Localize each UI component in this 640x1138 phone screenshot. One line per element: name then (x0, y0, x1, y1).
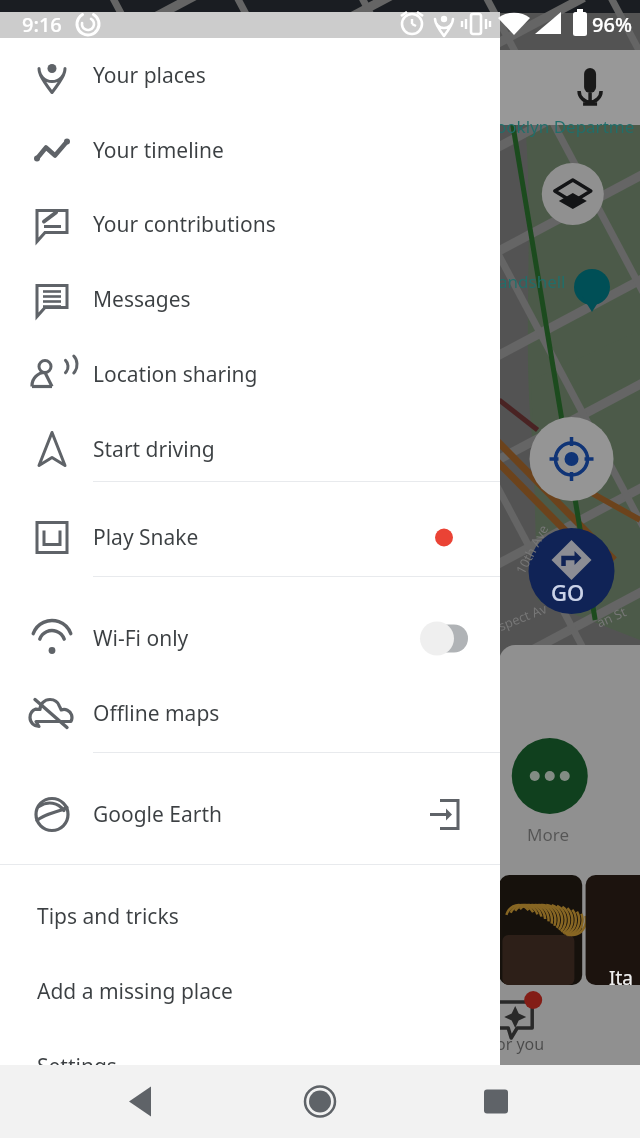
button[interactable]: Add a missing place (0, 954, 500, 1029)
button[interactable]: Start driving (0, 412, 500, 487)
staticText: Offline maps (93, 699, 220, 728)
staticText: Messages (93, 285, 191, 314)
button[interactable]: Your timeline (0, 113, 500, 188)
staticText: Wi-Fi only (93, 624, 189, 653)
staticText: Location sharing (93, 360, 258, 389)
button[interactable]: Settings (0, 1029, 500, 1104)
button[interactable]: Play Snake (0, 500, 500, 575)
button[interactable]: Tips and tricks (0, 879, 500, 954)
staticText: or you (496, 1033, 545, 1055)
button[interactable]: Location sharing (0, 337, 500, 412)
button[interactable]: Google Earth (0, 777, 500, 852)
staticText: Play Snake (93, 523, 199, 552)
button[interactable]: Your places (0, 38, 500, 113)
button[interactable]: Back (108, 1065, 172, 1138)
staticText: Tips and tricks (37, 902, 179, 931)
staticText: Google Earth (93, 800, 223, 829)
button[interactable]: Recents (464, 1065, 528, 1138)
staticText: Your contributions (93, 210, 276, 239)
staticText: More (527, 823, 569, 846)
staticText: 96% (592, 11, 632, 38)
staticText: Your places (93, 61, 206, 90)
staticText: Add a missing place (37, 977, 233, 1006)
staticText: GO (551, 577, 585, 607)
staticText: andshell (498, 270, 566, 293)
button[interactable]: Wi-Fi only (0, 601, 500, 676)
staticText: 10th Ave (511, 521, 553, 577)
button[interactable]: Offline maps (0, 676, 500, 751)
button[interactable]: Messages (0, 262, 500, 337)
button[interactable]: Home (288, 1065, 352, 1138)
staticText: 9:16 (22, 11, 62, 38)
staticText: Settings (37, 1052, 117, 1081)
button[interactable]: Your contributions (0, 187, 500, 262)
staticText: Start driving (93, 435, 215, 464)
staticText: an St (594, 602, 629, 632)
staticText: Ita (609, 965, 633, 991)
staticText: spect Av (495, 599, 549, 635)
staticText: ooklyn Departme (496, 115, 635, 138)
staticText: Your timeline (93, 136, 224, 165)
